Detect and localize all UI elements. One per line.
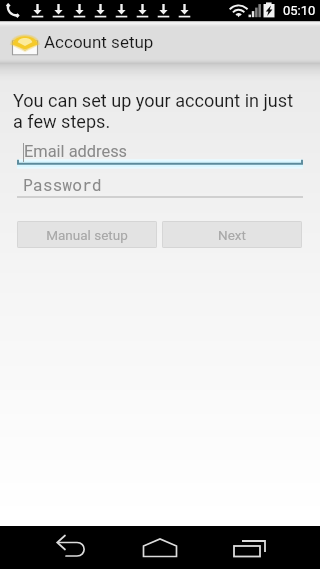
- button[interactable]: Account setup: [0, 21, 320, 64]
- staticText: Email address: [24, 142, 128, 161]
- button[interactable]: Back: [40, 526, 106, 569]
- button[interactable]: Manual setup: [17, 221, 157, 248]
- staticText: Next: [218, 227, 246, 243]
- staticText: 05:10: [283, 3, 316, 18]
- button[interactable]: Next: [162, 221, 302, 248]
- staticText: You can set up your account in just a fe…: [13, 90, 294, 132]
- button[interactable]: Home: [127, 526, 193, 569]
- button[interactable]: Recent apps: [216, 526, 282, 569]
- button[interactable]: Email address: [17, 141, 303, 165]
- staticText: Manual setup: [46, 227, 128, 243]
- button[interactable]: Password: [17, 175, 303, 198]
- staticText: Account setup: [44, 32, 154, 52]
- staticText: Password: [23, 174, 102, 196]
